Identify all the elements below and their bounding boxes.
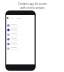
staticText: with recent contacts — [20, 6, 45, 10]
staticText: Contacts app list screen — [18, 2, 47, 6]
